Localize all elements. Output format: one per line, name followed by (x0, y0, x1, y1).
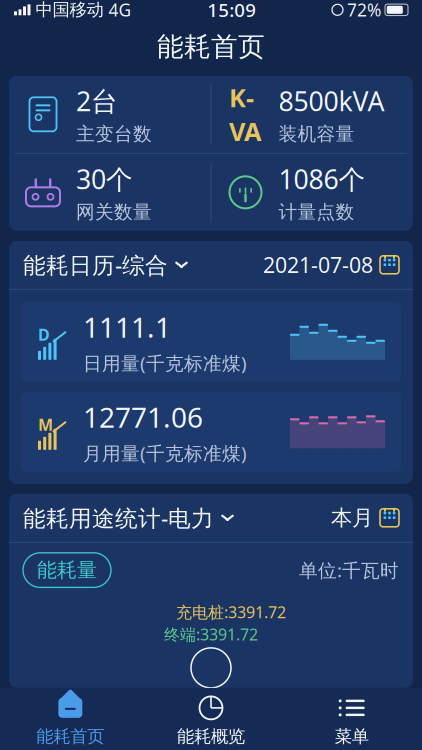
button[interactable]: 菜单 (281, 688, 422, 750)
staticText: 30个 (76, 161, 133, 197)
staticText: 能耗用途统计-电力 (23, 503, 214, 533)
staticText: 终端:3391.72 (164, 624, 258, 645)
staticText: 中国移动 (35, 0, 103, 20)
staticText: 2021-07-08 (263, 251, 373, 279)
staticText: 12771.06 (83, 398, 203, 435)
staticText: 网关数量 (76, 201, 152, 223)
staticText: 能耗首页 (36, 726, 104, 747)
staticText: 能耗概览 (177, 726, 245, 747)
button[interactable]: 能耗用途统计-电力 (23, 503, 235, 533)
staticText: 1086个 (278, 161, 365, 197)
staticText: 72% (347, 0, 381, 21)
button[interactable]: D (21, 302, 401, 382)
button[interactable]: 能耗首页 (0, 688, 141, 750)
staticText: 能耗日历-综合 (23, 250, 168, 280)
button[interactable]: 能耗概览 (141, 688, 281, 750)
staticText: 2台 (76, 83, 118, 119)
staticText: 能耗量 (37, 558, 97, 582)
button[interactable]: 本月 (331, 505, 399, 531)
staticText: 单位:千瓦时 (299, 558, 399, 582)
staticText: 菜单 (335, 726, 369, 747)
button[interactable]: 能耗日历-综合 (23, 250, 189, 280)
staticText: 装机容量 (278, 123, 354, 145)
staticText: KVA (229, 81, 262, 148)
staticText: 1111.1 (83, 308, 171, 345)
staticText: 15:09 (207, 0, 256, 22)
staticText: 日用量(千克标准煤) (83, 350, 247, 375)
staticText: 月用量(千克标准煤) (83, 440, 247, 465)
staticText: 主变台数 (76, 123, 152, 145)
button[interactable]: 能耗量 (23, 553, 111, 587)
staticText: 本月 (331, 505, 373, 531)
button[interactable]: M (21, 392, 401, 472)
staticText: 8500kVA (278, 83, 384, 119)
staticText: D (38, 324, 50, 345)
staticText: M (38, 414, 53, 435)
staticText: 能耗首页 (157, 30, 265, 63)
button[interactable]: 2021-07-08 (263, 251, 399, 279)
staticText: 计量点数 (278, 201, 354, 223)
staticText: 充电桩:3391.72 (176, 601, 286, 623)
staticText: 4G (108, 0, 131, 21)
